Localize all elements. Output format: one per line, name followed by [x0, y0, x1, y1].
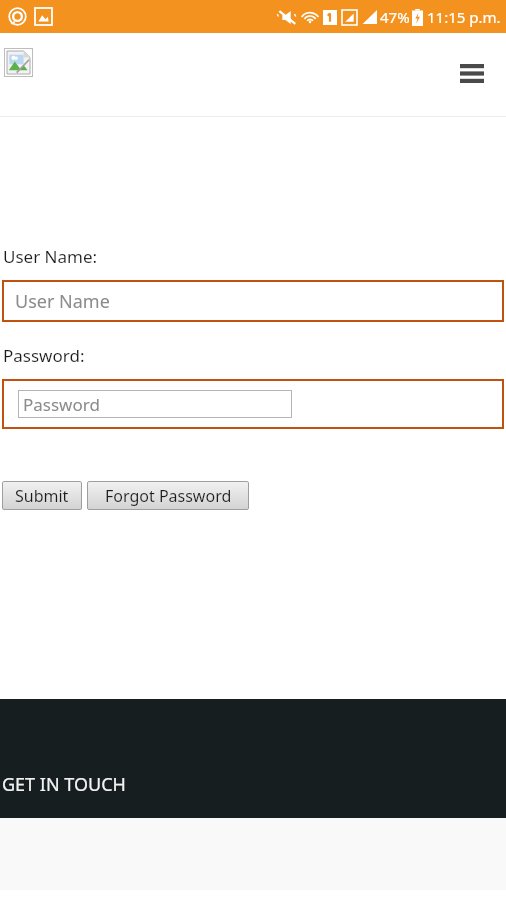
button[interactable]: Password	[18, 390, 292, 418]
button[interactable]: GET IN TOUCH	[2, 772, 126, 797]
staticText: Submit	[15, 485, 69, 507]
staticText: User Name	[15, 289, 110, 314]
staticText: Password	[23, 393, 100, 416]
staticText: Forgot Password	[105, 485, 232, 507]
staticText: GET IN TOUCH	[2, 772, 126, 797]
button[interactable]: User Name	[2, 280, 504, 322]
button[interactable]: Submit	[2, 481, 82, 510]
staticText: 11:15 p.m.	[427, 7, 501, 27]
staticText: User Name:	[3, 245, 98, 268]
button[interactable]: Open menu	[452, 53, 492, 93]
button[interactable]: Site logo	[4, 48, 33, 77]
staticText: 47%	[380, 7, 410, 27]
button[interactable]: Forgot Password	[87, 481, 249, 510]
staticText: Password:	[3, 344, 85, 367]
